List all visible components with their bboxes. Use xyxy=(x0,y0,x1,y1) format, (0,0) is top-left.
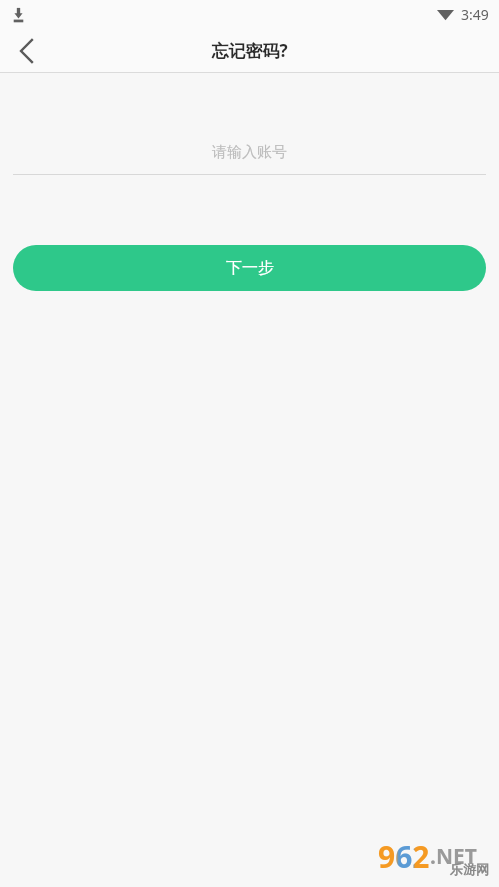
staticText: 请输入账号 xyxy=(212,143,287,162)
staticText: 3:49 xyxy=(461,5,489,24)
button[interactable]: Back xyxy=(0,28,52,73)
staticText: 忘记密码? xyxy=(211,39,288,62)
staticText: 下一步 xyxy=(226,258,274,278)
button[interactable]: 请输入账号 xyxy=(13,130,486,175)
staticText: 乐游网 xyxy=(450,861,489,877)
staticText: .NET xyxy=(430,842,477,871)
button[interactable]: 下一步 xyxy=(13,245,486,291)
staticText: 962 xyxy=(378,836,430,877)
